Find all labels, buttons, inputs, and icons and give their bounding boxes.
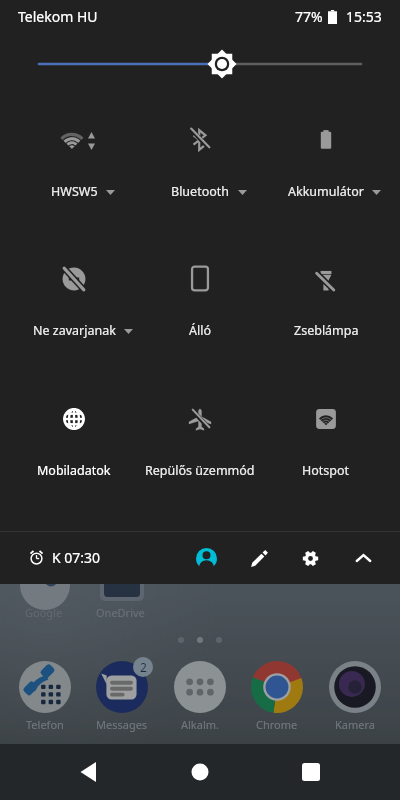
button[interactable]: Alkalm. (162, 661, 238, 732)
button[interactable]: Ne zavarjanak (12, 244, 136, 340)
staticText: Messages (96, 717, 148, 732)
button[interactable]: Akkumulátor (264, 105, 388, 201)
button[interactable]: Messages (84, 661, 160, 732)
button[interactable]: Bluetooth (138, 105, 262, 201)
staticText: Hotspot (302, 462, 350, 479)
button[interactable]: Telefon (7, 661, 83, 732)
staticText: HWSW5 (51, 183, 98, 200)
staticText: Alkalm. (181, 717, 219, 732)
staticText: 15:53 (346, 7, 382, 26)
staticText: K 07:30 (52, 548, 101, 567)
staticText: Telefon (26, 717, 64, 732)
staticText: Repülős üzemmód (145, 462, 255, 479)
button[interactable]: User (184, 536, 228, 580)
button[interactable]: Edit (237, 536, 281, 580)
button[interactable]: Hotspot (264, 384, 388, 480)
staticText: Kamera (335, 717, 375, 732)
staticText: Google (25, 605, 63, 620)
button[interactable]: HWSW5 (12, 105, 136, 201)
staticText: Telekom HU (18, 7, 98, 26)
button[interactable]: Collapse (341, 536, 385, 580)
button[interactable]: Settings (288, 536, 332, 580)
staticText: Akkumulátor (288, 183, 364, 200)
button[interactable]: Kamera (317, 661, 393, 732)
button[interactable]: Zseblámpa (264, 244, 388, 340)
staticText: Bluetooth (171, 183, 230, 200)
button[interactable]: Chrome (239, 661, 315, 732)
button[interactable]: Álló (138, 244, 262, 340)
button[interactable]: Repülős üzemmód (138, 384, 262, 480)
staticText: Ne zavarjanak (33, 322, 116, 339)
staticText: OneDrive (96, 605, 145, 620)
button[interactable]: K 07:30 (29, 548, 101, 567)
staticText: Mobiladatok (37, 462, 111, 479)
button[interactable]: Mobiladatok (12, 384, 136, 480)
staticText: 77% (295, 7, 323, 26)
staticText: Chrome (256, 717, 298, 732)
staticText: 2 (140, 659, 147, 675)
staticText: Zseblámpa (294, 322, 359, 339)
staticText: Álló (189, 322, 212, 339)
